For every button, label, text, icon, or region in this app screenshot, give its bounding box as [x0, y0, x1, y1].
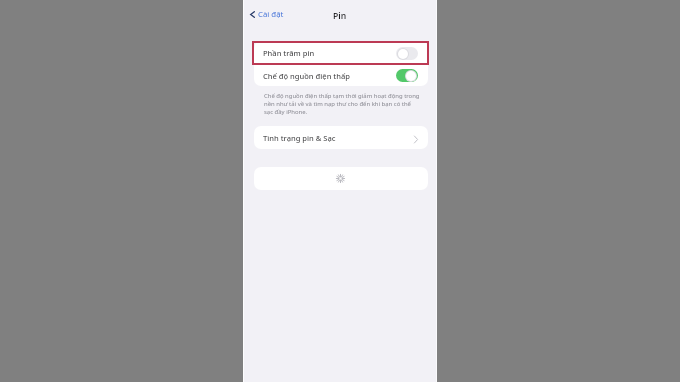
button[interactable]: Toggle on [396, 69, 418, 82]
staticText: Chế độ nguồn điện thấp [263, 71, 350, 81]
staticText: Phần trăm pin [263, 48, 315, 58]
button[interactable]: Tình trạng pin & Sạc [254, 126, 428, 149]
staticText: Cài đặt [258, 9, 284, 20]
button[interactable]: Toggle off [396, 47, 418, 60]
staticText: Chế độ nguồn điện thấp tạm thời giảm hoạ… [264, 92, 420, 116]
button[interactable]: Back to Cài đặt [247, 6, 287, 23]
staticText: Pin [333, 10, 347, 22]
button[interactable]: Phần trăm pin [254, 41, 428, 65]
button[interactable]: Chế độ nguồn điện thấp [254, 65, 428, 86]
staticText: Tình trạng pin & Sạc [263, 133, 336, 143]
